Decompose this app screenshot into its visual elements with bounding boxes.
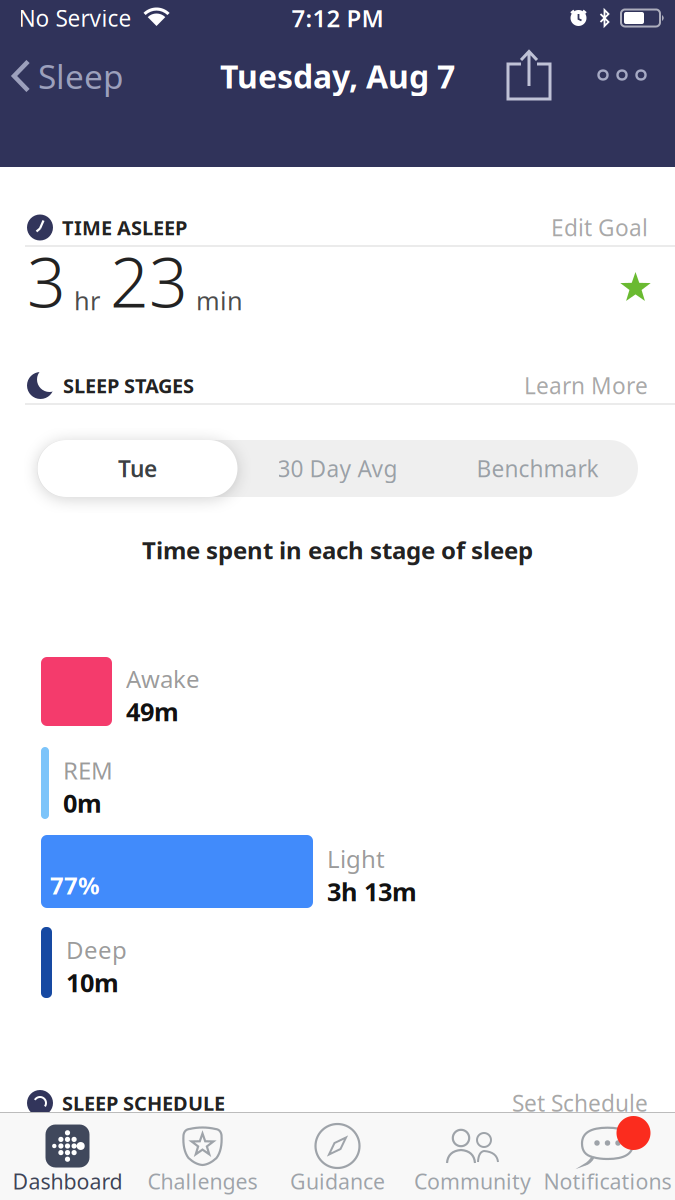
staticText: Dashboard [12,1167,122,1195]
staticText: Notifications [543,1167,671,1195]
button[interactable]: More [598,70,645,79]
staticText: Deep [66,934,127,966]
button[interactable]: Edit Goal [551,212,648,242]
button[interactable]: Challenges [135,1113,270,1200]
button[interactable]: Learn More [524,370,648,400]
staticText: Edit Goal [551,212,648,242]
staticText: Time spent in each stage of sleep [142,534,533,566]
staticText: Challenges [147,1167,257,1195]
staticText: SLEEP SCHEDULE [62,1090,225,1116]
staticText: TIME ASLEEP [62,214,187,241]
staticText: REM [63,754,113,786]
staticText: Set Schedule [512,1088,648,1118]
button[interactable]: 30 Day Avg [237,440,437,497]
staticText: min [196,283,243,317]
staticText: 3h 13m [327,875,417,908]
staticText: 0m [63,786,102,820]
button[interactable]: Community [405,1113,540,1200]
staticText: Benchmark [476,453,598,483]
button[interactable]: Benchmark [437,440,637,497]
button[interactable]: Tue [37,440,237,497]
staticText: Light [327,843,385,875]
staticText: SLEEP STAGES [63,372,194,399]
staticText: 10m [66,966,119,999]
staticText: 77% [50,869,100,901]
staticText: Awake [126,663,200,695]
staticText: Community [414,1167,531,1195]
staticText: hr [74,283,100,317]
button[interactable]: Share [506,49,552,101]
staticText: Learn More [524,370,648,400]
staticText: 7:12 PM [291,2,383,34]
staticText: 49m [126,695,179,728]
button[interactable]: Set Schedule [512,1088,648,1118]
staticText: 23 [110,236,188,326]
staticText: Sleep [38,54,124,98]
staticText: 3 [27,236,66,326]
staticText: Tue [118,453,157,483]
button[interactable]: Guidance [270,1113,405,1200]
staticText: No Service [18,3,131,33]
button[interactable]: Dashboard [0,1113,135,1200]
staticText: 30 Day Avg [277,453,397,483]
staticText: Guidance [290,1167,385,1195]
staticText: Tuesday, Aug 7 [220,55,455,97]
button[interactable]: Back [12,54,124,98]
button[interactable]: Notifications [540,1113,675,1200]
